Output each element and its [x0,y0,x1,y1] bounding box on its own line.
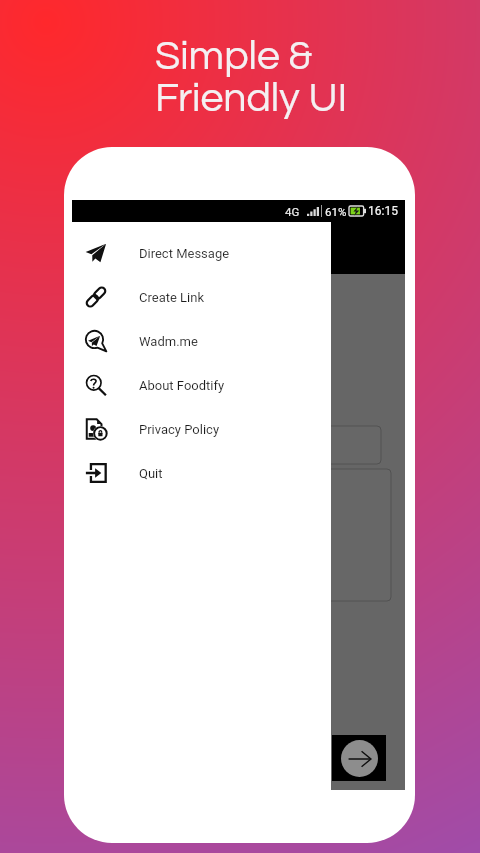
staticText: Friendly UI [155,77,348,119]
staticText: 16:15 [368,204,398,218]
button[interactable]: Wadm.me [72,319,331,363]
button[interactable]: Privacy Policy [72,407,331,451]
button[interactable]: Create Link [72,275,331,319]
staticText: Privacy Policy [139,422,220,437]
staticText: Quit [139,466,163,481]
staticText: Create Link [139,290,205,305]
button[interactable]: Next [332,735,386,781]
staticText: 61% [325,205,347,218]
staticText: Wadm.me [139,334,198,349]
staticText: Direct Message [139,246,230,261]
staticText: Simple & [155,35,313,77]
staticText: About Foodtify [139,378,225,393]
button[interactable]: About Foodtify [72,363,331,407]
button[interactable]: Quit [72,451,331,495]
button[interactable]: Direct Message [72,231,331,275]
staticText: 4G [285,205,300,218]
